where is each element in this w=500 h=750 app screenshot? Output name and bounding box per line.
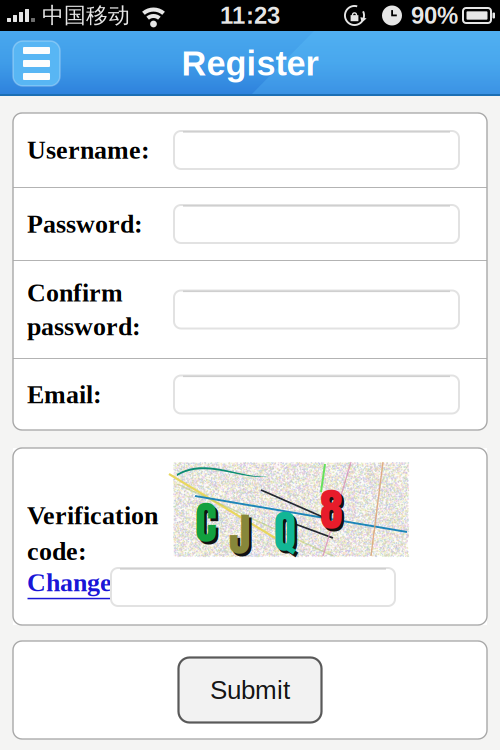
staticText: Username: <box>27 136 150 164</box>
staticText: Submit <box>210 675 290 704</box>
staticText: code: <box>27 537 87 566</box>
staticText: Register <box>181 44 318 83</box>
staticText: Q <box>274 497 297 566</box>
staticText: Password: <box>27 210 143 238</box>
button[interactable]: Menu <box>13 41 60 86</box>
staticText: C <box>198 491 220 559</box>
staticText: 90% <box>411 2 458 29</box>
staticText: 8 <box>320 475 343 544</box>
staticText: J <box>229 500 250 569</box>
button[interactable]: Change <box>27 568 112 599</box>
staticText: Verification <box>27 501 158 530</box>
staticText: Change <box>27 568 112 597</box>
staticText: password: <box>27 312 141 341</box>
staticText: Q <box>277 500 300 568</box>
staticText: 8 <box>323 478 346 546</box>
staticText: Email: <box>27 380 102 409</box>
staticText: 中国移动 <box>42 2 130 29</box>
staticText: Confirm <box>27 278 123 307</box>
staticText: C <box>195 488 217 557</box>
button[interactable]: Submit <box>178 657 321 722</box>
staticText: J <box>232 503 253 571</box>
staticText: 11:23 <box>220 2 280 29</box>
